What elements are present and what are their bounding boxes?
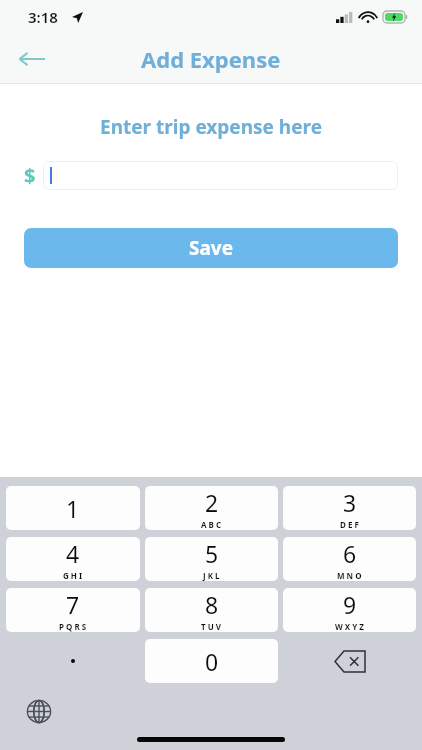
button[interactable]: 0 bbox=[145, 639, 278, 683]
staticText: 9 bbox=[343, 589, 357, 620]
button[interactable]: 8 bbox=[145, 588, 278, 632]
button[interactable]: 4 bbox=[6, 537, 140, 581]
button[interactable]: 3 bbox=[283, 486, 416, 530]
staticText: Enter trip expense here bbox=[0, 114, 422, 140]
button[interactable]: 7 bbox=[6, 588, 140, 632]
button[interactable]: 2 bbox=[145, 486, 278, 530]
staticText: 4 bbox=[66, 538, 80, 569]
staticText: 0 bbox=[205, 646, 219, 677]
button[interactable]: 5 bbox=[145, 537, 278, 581]
staticText: A B C bbox=[201, 519, 222, 530]
button[interactable]: Decimal point bbox=[6, 639, 140, 683]
staticText: J K L bbox=[203, 570, 220, 581]
staticText: 5 bbox=[205, 538, 219, 569]
staticText: T U V bbox=[201, 621, 222, 632]
button[interactable]: Save bbox=[24, 228, 398, 268]
staticText: 3:18 bbox=[28, 7, 58, 27]
staticText: 1 bbox=[66, 493, 80, 524]
staticText: M N O bbox=[337, 570, 362, 581]
button[interactable]: Backspace bbox=[283, 639, 416, 683]
button[interactable] bbox=[43, 161, 398, 190]
button[interactable]: 9 bbox=[283, 588, 416, 632]
staticText: $ bbox=[24, 162, 36, 189]
staticText: Add Expense bbox=[141, 44, 281, 74]
staticText: P Q R S bbox=[59, 621, 87, 632]
staticText: 6 bbox=[343, 538, 357, 569]
staticText: G H I bbox=[63, 570, 83, 581]
staticText: 2 bbox=[205, 487, 219, 518]
button[interactable]: Switch keyboard language bbox=[22, 694, 56, 728]
staticText: 8 bbox=[205, 589, 219, 620]
staticText: 7 bbox=[66, 589, 80, 620]
staticText: 3 bbox=[343, 487, 357, 518]
staticText: D E F bbox=[340, 519, 359, 530]
button[interactable]: Back bbox=[10, 37, 54, 81]
staticText: Save bbox=[189, 235, 234, 261]
staticText: W X Y Z bbox=[335, 621, 364, 632]
button[interactable]: 1 bbox=[6, 486, 140, 530]
button[interactable]: 6 bbox=[283, 537, 416, 581]
